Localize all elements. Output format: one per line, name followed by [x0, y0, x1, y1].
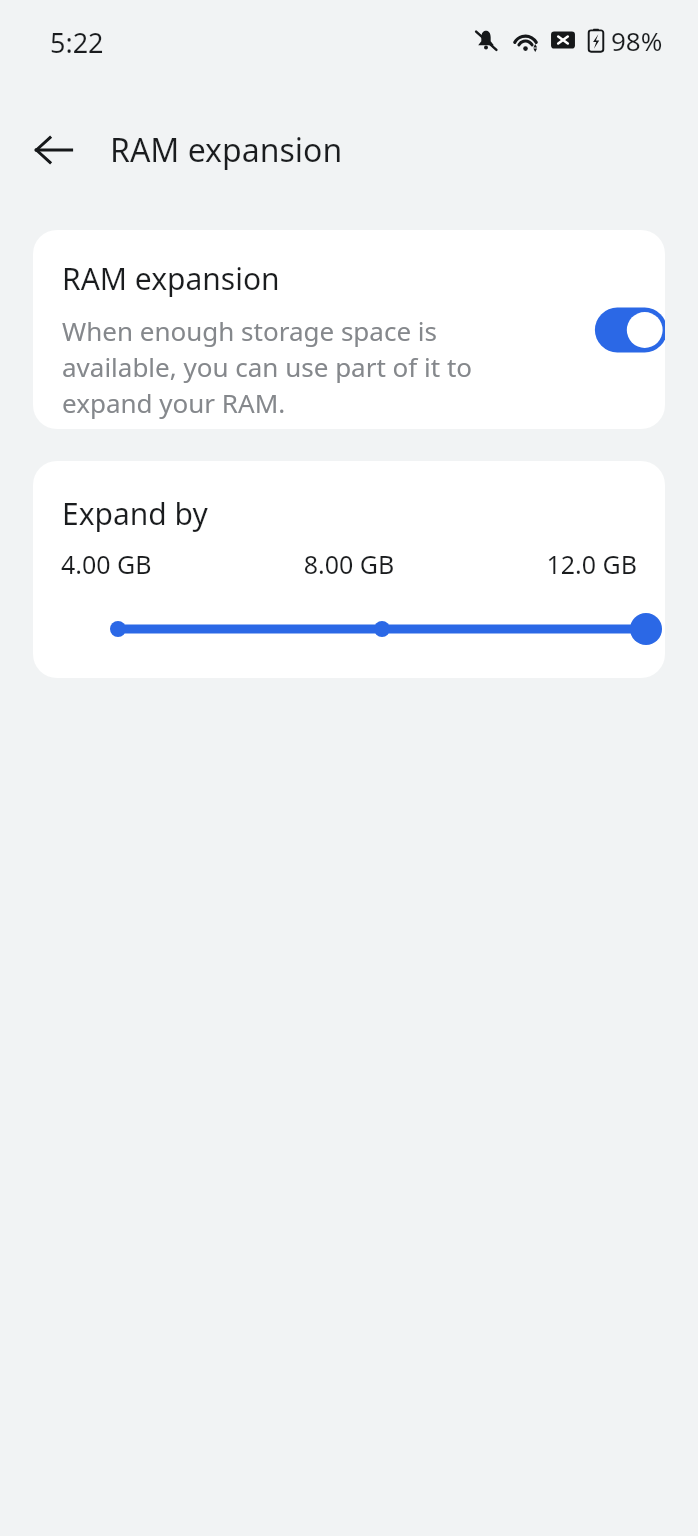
- button[interactable]: RAM expansion: [33, 230, 665, 429]
- button[interactable]: Expand by slider, 12.0 GB: [73, 599, 665, 659]
- staticText: Expand by: [62, 493, 208, 534]
- staticText: 12.0 GB: [445, 547, 637, 581]
- staticText: 5:22: [50, 24, 104, 61]
- staticText: 98%: [611, 23, 663, 58]
- staticText: 4.00 GB: [61, 547, 253, 581]
- staticText: When enough storage space is available, …: [62, 313, 482, 421]
- staticText: RAM expansion: [110, 128, 343, 172]
- button[interactable]: RAM expansion toggle, on: [589, 302, 665, 358]
- staticText: 8.00 GB: [253, 547, 445, 581]
- staticText: RAM expansion: [62, 258, 280, 299]
- button[interactable]: Back: [18, 114, 90, 186]
